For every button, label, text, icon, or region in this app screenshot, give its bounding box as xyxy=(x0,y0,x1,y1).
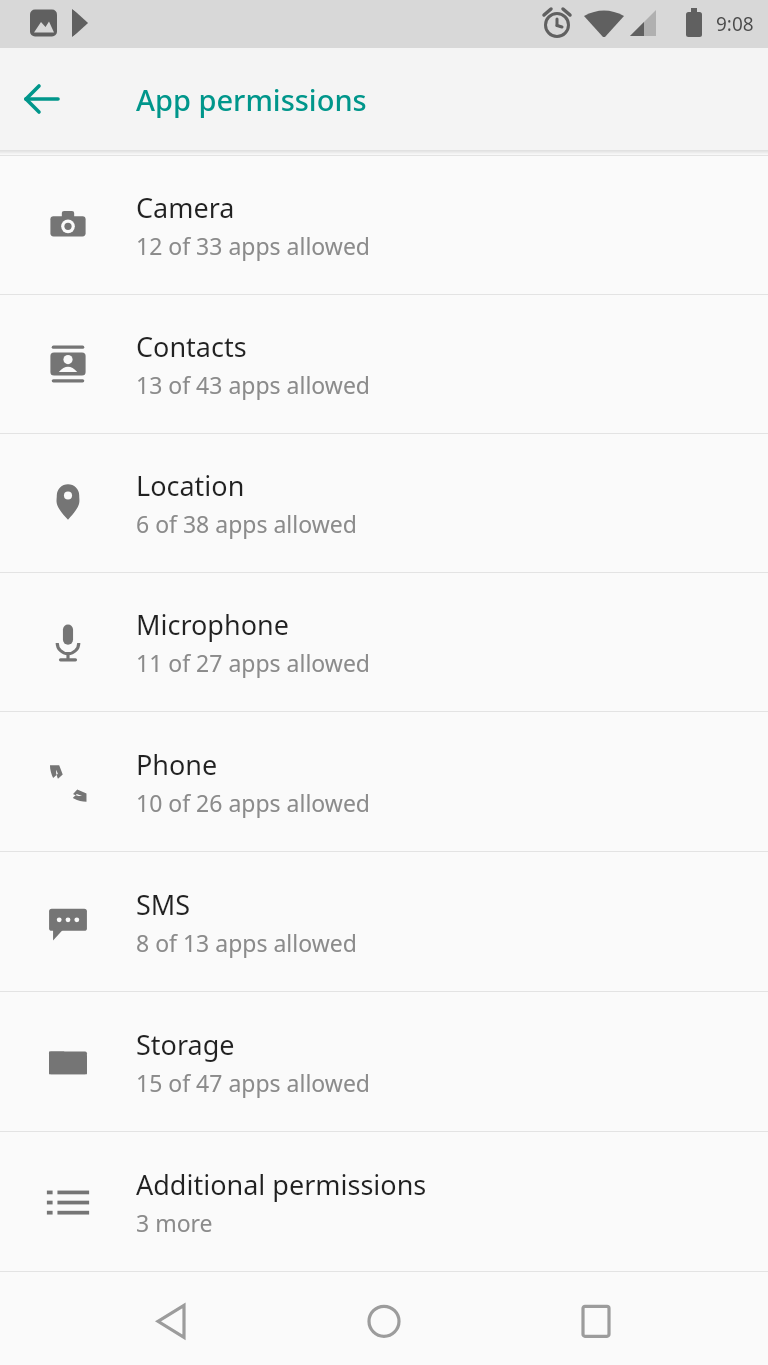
button[interactable]: Home xyxy=(352,1287,416,1351)
staticText: Contacts xyxy=(136,328,247,365)
button[interactable]: Back xyxy=(14,71,70,127)
button[interactable]: SMS xyxy=(0,852,768,991)
staticText: Microphone xyxy=(136,606,289,643)
button[interactable]: Phone xyxy=(0,712,768,851)
staticText: Location xyxy=(136,467,245,504)
button[interactable]: Camera xyxy=(0,156,768,294)
staticText: 15 of 47 apps allowed xyxy=(136,1067,371,1098)
button[interactable]: Microphone xyxy=(0,573,768,711)
staticText: App permissions xyxy=(136,80,367,119)
button[interactable]: Back xyxy=(140,1287,204,1351)
staticText: 8 of 13 apps allowed xyxy=(136,927,357,958)
staticText: 3 more xyxy=(136,1207,213,1238)
button[interactable]: Recents xyxy=(564,1287,628,1351)
staticText: Additional permissions xyxy=(136,1166,427,1203)
staticText: 9:08 xyxy=(716,11,754,37)
staticText: Storage xyxy=(136,1026,235,1063)
staticText: 6 of 38 apps allowed xyxy=(136,508,357,539)
staticText: SMS xyxy=(136,886,191,923)
button[interactable]: Storage xyxy=(0,992,768,1131)
staticText: 12 of 33 apps allowed xyxy=(136,230,371,261)
staticText: Camera xyxy=(136,189,235,226)
staticText: 13 of 43 apps allowed xyxy=(136,369,371,400)
staticText: 10 of 26 apps allowed xyxy=(136,787,371,818)
button[interactable]: Additional permissions xyxy=(0,1132,768,1271)
button[interactable]: Location xyxy=(0,434,768,572)
staticText: 11 of 27 apps allowed xyxy=(136,647,371,678)
button[interactable]: Contacts xyxy=(0,295,768,433)
staticText: Phone xyxy=(136,746,218,783)
